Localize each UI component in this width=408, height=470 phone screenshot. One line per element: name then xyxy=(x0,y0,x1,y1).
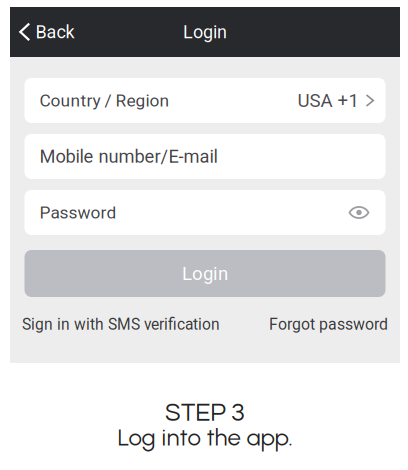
button[interactable]: Forgot password xyxy=(269,315,388,334)
staticText: USA +1 xyxy=(297,90,358,111)
button[interactable]: Country / Region xyxy=(10,78,400,123)
button[interactable]: Back xyxy=(10,12,86,52)
staticText: Back xyxy=(35,21,74,43)
staticText: Mobile number/E-mail xyxy=(39,146,217,167)
staticText: Password xyxy=(39,202,116,223)
button[interactable]: Login xyxy=(10,250,400,297)
staticText: Forgot password xyxy=(269,315,388,334)
staticText: Login xyxy=(182,263,228,284)
button[interactable]: Sign in with SMS verification xyxy=(22,315,220,333)
button[interactable]: Password xyxy=(10,190,400,235)
button[interactable]: Mobile number/E-mail xyxy=(10,134,400,179)
staticText: STEP 3 xyxy=(165,400,245,426)
staticText: Log into the app. xyxy=(117,423,292,451)
staticText: Sign in with SMS verification xyxy=(22,315,220,333)
staticText: Login xyxy=(183,21,227,43)
staticText: Country / Region xyxy=(39,90,169,111)
